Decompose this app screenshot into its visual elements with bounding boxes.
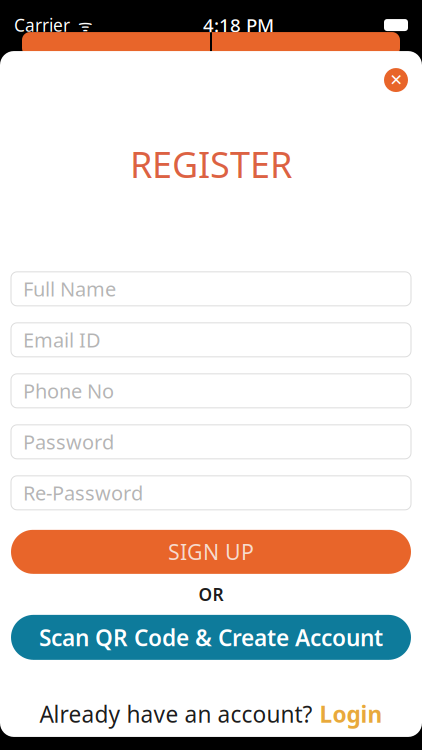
button[interactable]: Already have an account? (39, 699, 382, 729)
staticText: SIGN UP (168, 538, 254, 566)
staticText: Password (23, 429, 114, 455)
button[interactable]: SIGN UP (11, 530, 411, 574)
staticText: ✕ (389, 71, 402, 89)
staticText: REGISTER (130, 140, 292, 188)
staticText: Phone No (23, 378, 114, 404)
staticText: OR (198, 583, 223, 606)
staticText: Carrier (14, 13, 70, 36)
staticText: Already have an account? (39, 699, 312, 729)
staticText: Scan QR Code & Create Account (39, 622, 383, 652)
button[interactable]: Close (384, 68, 408, 92)
staticText: Email ID (23, 327, 101, 353)
staticText: Login (319, 699, 382, 729)
staticText: Full Name (23, 276, 116, 302)
staticText: Re-Password (23, 480, 143, 506)
staticText: 4:18 PM (203, 13, 274, 37)
button[interactable]: Scan QR Code & Create Account (11, 615, 411, 660)
staticText: ᯤ (70, 14, 93, 36)
